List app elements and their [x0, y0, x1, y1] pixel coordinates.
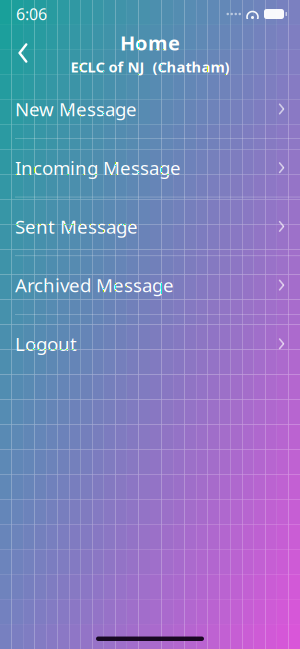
button[interactable]: Incoming Message — [0, 139, 300, 197]
button[interactable]: Back — [6, 36, 40, 70]
staticText: Sent Message — [15, 214, 138, 239]
button[interactable]: Logout — [0, 315, 300, 373]
staticText: Home — [120, 29, 180, 56]
staticText: Logout — [15, 331, 77, 356]
staticText: Incoming Message — [15, 155, 181, 180]
button[interactable]: New Message — [0, 80, 300, 138]
button[interactable]: Archived Message — [0, 256, 300, 314]
staticText: ECLC of NJ (Chatham) — [70, 57, 229, 76]
staticText: 6:06 — [16, 3, 47, 25]
staticText: Archived Message — [15, 273, 174, 297]
staticText: New Message — [15, 97, 137, 121]
button[interactable]: Sent Message — [0, 197, 300, 255]
